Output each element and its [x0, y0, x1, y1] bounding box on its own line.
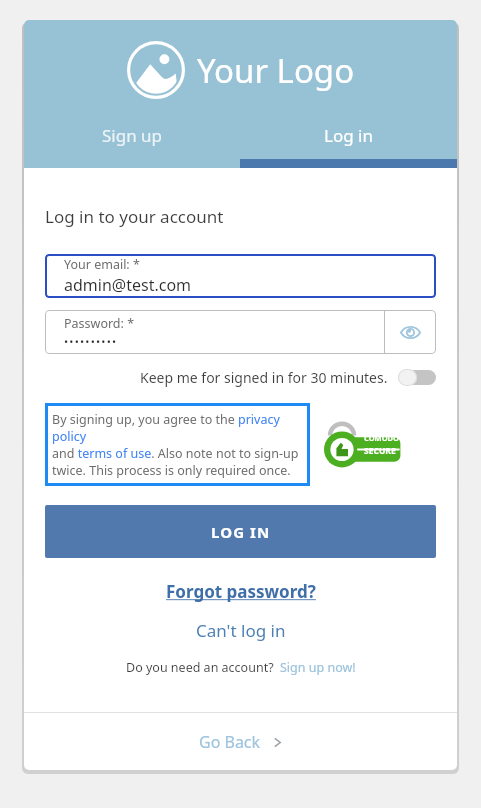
button[interactable]: Log in [240, 120, 457, 168]
button[interactable]: Sign up [24, 120, 240, 168]
staticText: Password: * [64, 315, 135, 332]
staticText: Log in to your account [45, 205, 224, 228]
staticText: Can't log in [196, 619, 286, 642]
button[interactable]: Forgot password? [166, 580, 316, 603]
staticText: Go Back [199, 731, 261, 753]
button[interactable]: Show password [385, 310, 436, 354]
button[interactable]: Keep me for signed in for 30 minutes. [45, 368, 436, 387]
button[interactable]: LOG IN [45, 505, 436, 558]
staticText: By signing up, you agree to the privacy … [52, 411, 305, 479]
button[interactable]: Can't log in [196, 619, 286, 642]
staticText: •••••••••• [64, 334, 118, 349]
staticText: SECURE [364, 445, 396, 457]
staticText: Keep me for signed in for 30 minutes. [140, 368, 388, 387]
staticText: Sign up now! [280, 659, 356, 676]
button[interactable]: Your email: * [45, 254, 436, 298]
button[interactable]: By signing up, you agree to the privacy … [45, 403, 310, 486]
staticText: COMODO [364, 433, 400, 443]
staticText: Your Logo [197, 48, 355, 93]
staticText: admin@test.com [64, 274, 192, 296]
staticText: Your email: * [64, 256, 140, 273]
button[interactable]: Do you need an account? [126, 659, 356, 676]
staticText: LOG IN [211, 522, 271, 542]
button[interactable]: Comodo Secure [322, 417, 402, 473]
staticText: Do you need an account? [126, 659, 274, 676]
staticText: Sign up [102, 124, 163, 147]
staticText: Forgot password? [166, 580, 316, 603]
button[interactable]: Password: * [45, 310, 384, 354]
other: Logo [127, 41, 185, 99]
staticText: Log in [324, 124, 373, 147]
button[interactable]: Go Back [24, 713, 457, 770]
